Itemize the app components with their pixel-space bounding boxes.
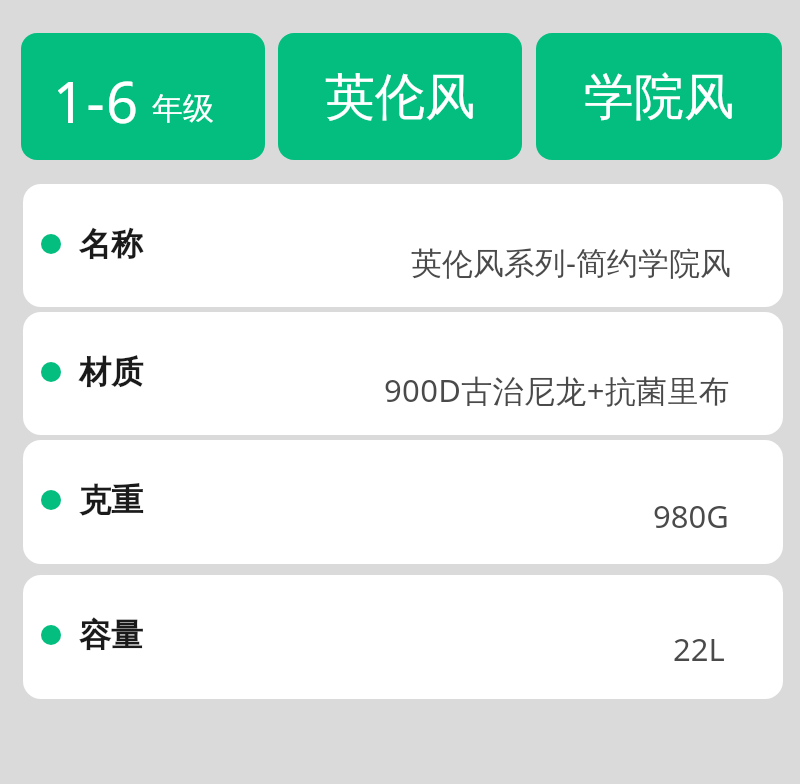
staticText: 1-6: [53, 63, 140, 139]
staticText: 英伦风系列-简约学院风: [411, 241, 731, 283]
staticText: 900D古治尼龙+抗菌里布: [384, 369, 731, 411]
staticText: 材质: [79, 352, 143, 392]
staticText: 英伦风: [325, 66, 475, 129]
staticText: 名称: [79, 224, 143, 264]
staticText: 年级: [152, 89, 214, 128]
button[interactable]: 材质: [23, 312, 783, 435]
button[interactable]: 学院风: [536, 33, 782, 160]
staticText: 克重: [79, 480, 143, 520]
staticText: 980G: [653, 495, 729, 537]
button[interactable]: 克重: [23, 440, 783, 564]
button[interactable]: 1-6: [21, 33, 265, 160]
staticText: 容量: [79, 615, 143, 655]
staticText: 学院风: [584, 66, 734, 129]
button[interactable]: 容量: [23, 575, 783, 699]
button[interactable]: 英伦风: [278, 33, 522, 160]
staticText: 22L: [673, 628, 725, 670]
button[interactable]: 名称: [23, 184, 783, 307]
